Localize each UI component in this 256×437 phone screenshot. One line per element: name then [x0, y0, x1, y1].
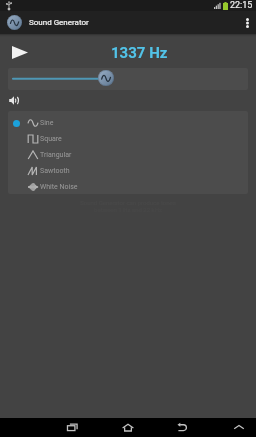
button[interactable]: Sine: [8, 115, 248, 131]
staticText: Square: [40, 135, 62, 143]
button[interactable]: White Noise: [8, 179, 248, 194]
staticText: 1337 Hz: [111, 44, 168, 62]
staticText: Sawtooth: [40, 167, 70, 175]
button[interactable]: More options: [238, 11, 256, 34]
button[interactable]: Expand: [222, 418, 256, 437]
button[interactable]: Volume: [6, 93, 22, 107]
button[interactable]: Recents: [56, 418, 90, 437]
staticText: Triangular: [40, 151, 72, 159]
staticText: Sine: [40, 119, 54, 127]
button[interactable]: Home: [111, 418, 145, 437]
button[interactable]: Sawtooth: [8, 163, 248, 179]
staticText: Sound Generator: [29, 18, 89, 27]
staticText: White Noise: [40, 183, 78, 191]
button[interactable]: Triangular: [8, 147, 248, 163]
button[interactable]: Square: [8, 131, 248, 147]
staticText: 22:15: [230, 0, 253, 11]
button[interactable]: Frequency slider: [8, 68, 248, 90]
button[interactable]: Back: [165, 418, 199, 437]
button[interactable]: Play: [8, 42, 32, 62]
